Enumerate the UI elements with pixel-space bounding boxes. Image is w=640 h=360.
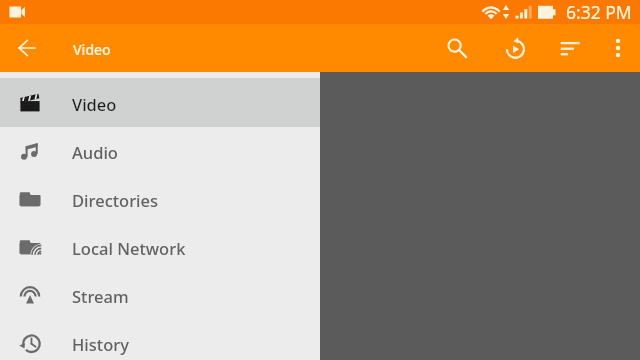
button[interactable]: Audio <box>0 127 320 175</box>
staticText: 6:32 PM <box>566 0 632 24</box>
staticText: Video <box>73 40 111 59</box>
staticText: History <box>72 333 129 355</box>
staticText: Audio <box>72 141 118 163</box>
button[interactable]: Video <box>0 78 320 127</box>
button[interactable]: Back <box>3 24 51 72</box>
button[interactable]: Resume playback <box>491 24 539 72</box>
button[interactable]: Search <box>433 24 481 72</box>
staticText: Video <box>72 93 117 115</box>
staticText: Local Network <box>72 237 186 259</box>
staticText: Stream <box>72 285 129 307</box>
button[interactable]: Local Network <box>0 223 320 271</box>
button[interactable]: History <box>0 319 320 360</box>
staticText: Directories <box>72 189 159 211</box>
button[interactable]: Sort <box>546 24 594 72</box>
button[interactable]: More options <box>594 24 640 72</box>
button[interactable]: Directories <box>0 175 320 223</box>
button[interactable]: Stream <box>0 271 320 319</box>
